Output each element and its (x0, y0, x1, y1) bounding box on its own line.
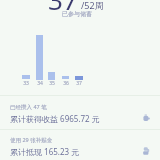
staticText: 37 (73, 80, 85, 87)
staticText: 使用 29 张补贴金 (10, 136, 53, 144)
staticText: 35 (46, 80, 58, 87)
button[interactable]: 抵现 (143, 146, 153, 156)
button[interactable]: 收益 (142, 113, 151, 122)
staticText: 37 (48, 0, 78, 17)
staticText: 36 (60, 80, 72, 87)
staticText: 34 (34, 80, 46, 87)
staticText: 33 (20, 80, 32, 87)
staticText: 累计抵现 165.23 元 (10, 146, 80, 157)
staticText: 已经攒入 47 笔 (10, 103, 47, 111)
staticText: /52周 (81, 0, 104, 11)
staticText: 已参与储蓄 (62, 10, 92, 18)
staticText: 累计获得收益 6965.72 元 (10, 113, 100, 124)
